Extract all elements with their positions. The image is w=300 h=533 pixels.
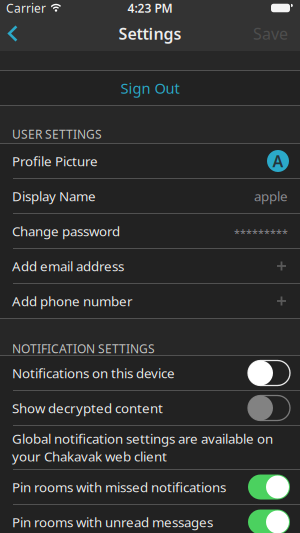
button[interactable]: Pin rooms with missed notifications xyxy=(248,474,290,499)
staticText: NOTIFICATION SETTINGS xyxy=(12,341,155,356)
staticText: Show decrypted content xyxy=(12,399,163,417)
button[interactable]: Pin rooms with unread messages xyxy=(248,509,290,533)
staticText: Settings xyxy=(118,23,181,44)
button[interactable]: Sign Out xyxy=(0,71,300,105)
button[interactable]: Save xyxy=(253,23,300,44)
button[interactable]: Display Name xyxy=(0,179,300,213)
staticText: Add email address xyxy=(12,257,124,275)
button[interactable]: Change password xyxy=(0,214,300,248)
staticText: Profile Picture xyxy=(12,152,98,170)
staticText: apple xyxy=(254,187,288,205)
staticText: Pin rooms with unread messages xyxy=(12,513,213,531)
staticText: ********* xyxy=(234,226,288,240)
button[interactable]: Notifications on this device xyxy=(248,360,290,385)
staticText: A xyxy=(272,150,283,172)
staticText: Global notification settings are availab… xyxy=(12,430,273,447)
staticText: Pin rooms with missed notifications xyxy=(12,478,226,496)
staticText: Change password xyxy=(12,222,120,240)
button[interactable]: Show decrypted content xyxy=(248,395,290,420)
button[interactable]: Profile Picture xyxy=(0,144,300,178)
button[interactable]: Back xyxy=(0,25,19,42)
staticText: Save xyxy=(253,23,288,44)
staticText: your Chakavak web client xyxy=(12,447,167,465)
staticText: Notifications on this device xyxy=(12,364,175,382)
staticText: 4:23 PM xyxy=(127,0,172,16)
staticText: Carrier xyxy=(6,0,46,16)
button[interactable]: Add email address xyxy=(0,249,300,283)
staticText: Display Name xyxy=(12,187,96,205)
staticText: Sign Out xyxy=(120,78,179,98)
staticText: USER SETTINGS xyxy=(12,126,102,142)
button[interactable]: Add phone number xyxy=(0,284,300,318)
staticText: Add phone number xyxy=(12,292,133,310)
